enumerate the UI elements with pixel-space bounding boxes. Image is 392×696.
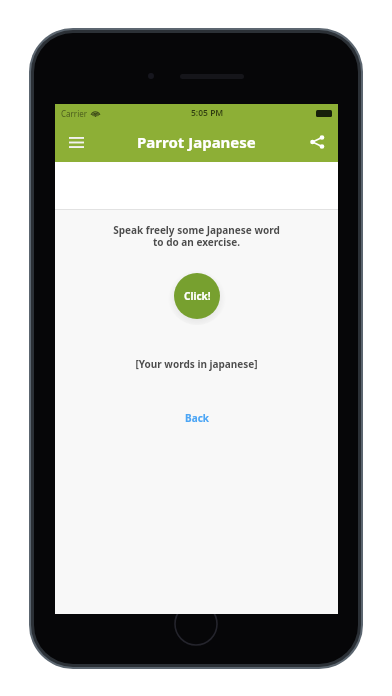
staticText: Parrot Japanese: [137, 132, 256, 152]
button[interactable]: Share: [302, 127, 332, 157]
staticText: Speak freely some Japanese word to do an…: [113, 223, 280, 249]
button[interactable]: Back: [175, 408, 219, 428]
staticText: 5:05 PM: [191, 107, 224, 119]
staticText: [Your words in japanese]: [135, 357, 258, 371]
staticText: Carrier: [61, 108, 88, 119]
staticText: Back: [185, 411, 209, 425]
button[interactable]: Click!: [174, 273, 220, 319]
button[interactable]: Menu: [61, 127, 91, 157]
staticText: Click!: [184, 289, 211, 303]
